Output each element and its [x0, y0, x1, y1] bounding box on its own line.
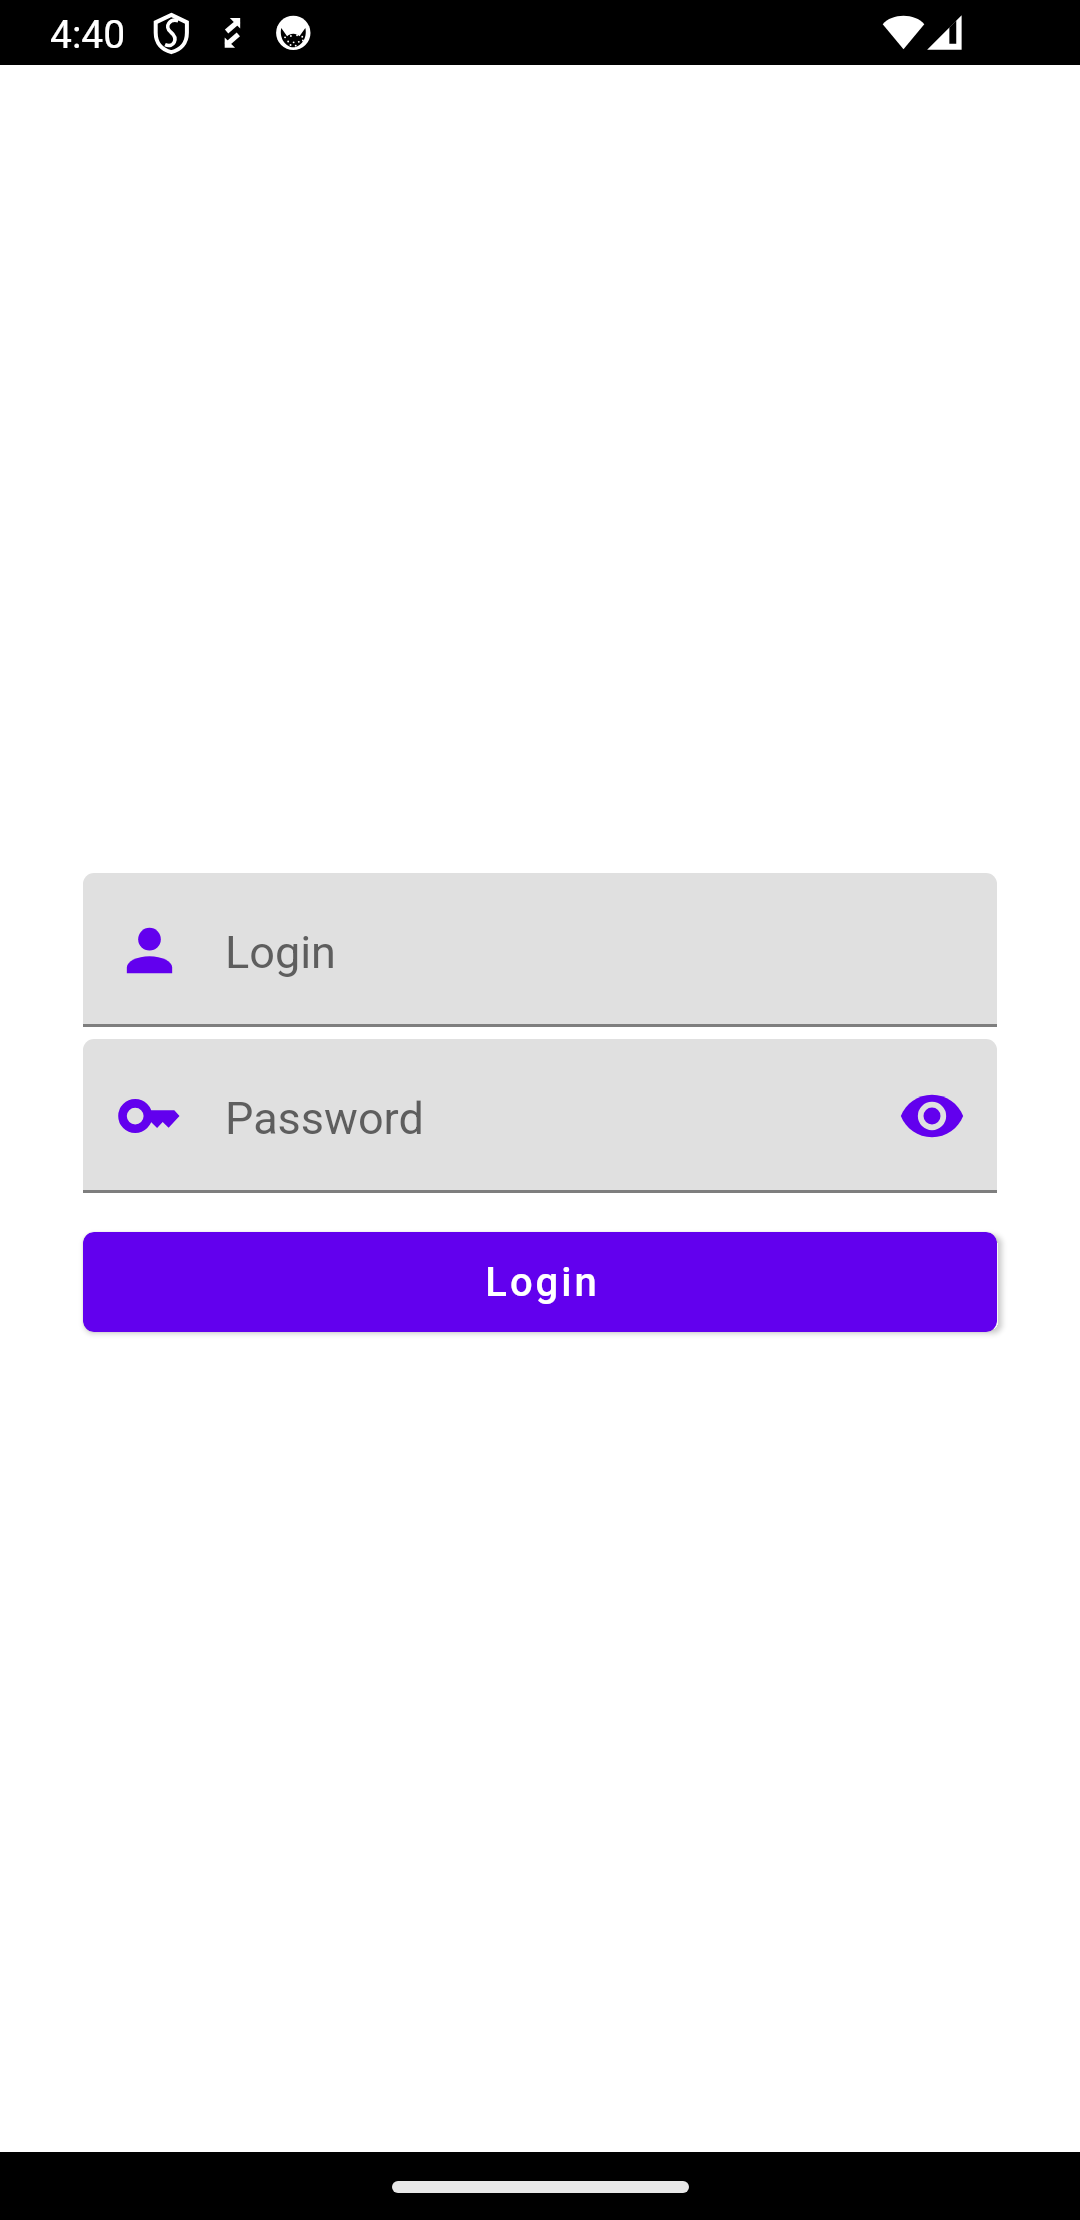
- staticText: 4:40: [50, 12, 126, 58]
- button[interactable]: Login: [83, 1232, 997, 1332]
- button[interactable]: Password: [83, 1039, 997, 1193]
- button[interactable]: Login: [83, 873, 997, 1027]
- button[interactable]: Show password: [898, 1082, 966, 1150]
- staticText: Login: [485, 1259, 600, 1306]
- staticText: Password: [225, 1092, 424, 1145]
- staticText: Login: [225, 926, 336, 979]
